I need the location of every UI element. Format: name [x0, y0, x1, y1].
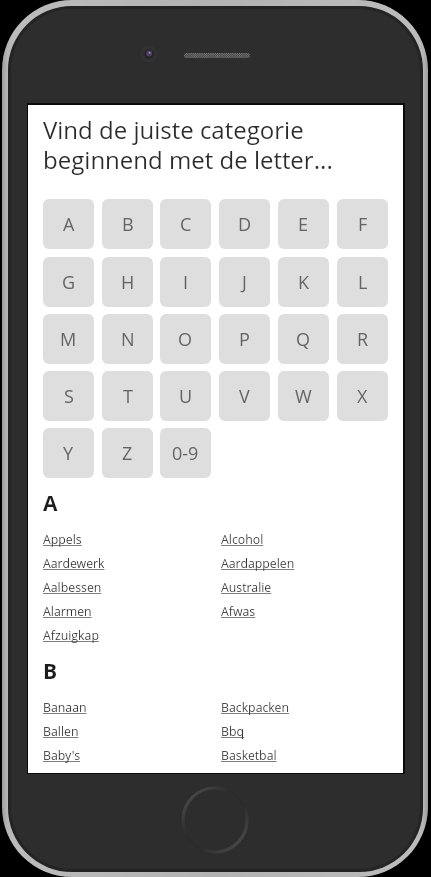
staticText: Afwas — [221, 603, 256, 620]
button[interactable]: P — [219, 314, 270, 364]
staticText: K — [298, 270, 310, 295]
button[interactable]: D — [219, 199, 270, 249]
button[interactable]: 0-9 — [160, 428, 211, 478]
staticText: Bbq — [221, 723, 245, 740]
button[interactable]: L — [337, 257, 388, 307]
button[interactable]: E — [278, 199, 329, 249]
staticText: U — [179, 384, 193, 409]
staticText: Aardewerk — [43, 555, 105, 572]
staticText: R — [357, 327, 369, 352]
staticText: Basketbal — [221, 747, 277, 764]
button[interactable]: Aardewerk — [43, 555, 105, 573]
staticText: Alarmen — [43, 603, 92, 620]
button[interactable]: R — [337, 314, 388, 364]
staticText: V — [239, 384, 250, 409]
staticText: Australie — [221, 579, 272, 596]
staticText: M — [60, 327, 77, 352]
staticText: Afzuigkap — [43, 627, 99, 644]
staticText: B — [122, 212, 134, 237]
staticText: Q — [296, 327, 311, 352]
staticText: G — [62, 270, 76, 295]
staticText: N — [121, 327, 135, 352]
button[interactable]: Aalbessen — [43, 579, 102, 597]
button[interactable]: K — [278, 257, 329, 307]
button[interactable]: U — [160, 371, 211, 421]
other: Front camera — [139, 44, 159, 64]
button[interactable]: B — [102, 199, 153, 249]
button[interactable]: O — [160, 314, 211, 364]
button[interactable]: Alcohol — [221, 531, 264, 549]
staticText: S — [64, 384, 74, 409]
button[interactable]: Z — [102, 428, 153, 478]
button[interactable]: Basketbal — [221, 747, 277, 765]
staticText: T — [123, 384, 133, 409]
staticText: Z — [122, 441, 133, 466]
button[interactable]: V — [219, 371, 270, 421]
button[interactable]: N — [102, 314, 153, 364]
staticText: Banaan — [43, 699, 87, 716]
button[interactable]: Y — [43, 428, 94, 478]
button[interactable]: Aardappelen — [221, 555, 295, 573]
button[interactable]: Banaan — [43, 699, 87, 717]
button[interactable]: H — [102, 257, 153, 307]
staticText: H — [121, 270, 135, 295]
button[interactable]: Australie — [221, 579, 272, 597]
button[interactable]: Afzuigkap — [43, 627, 99, 645]
button[interactable]: F — [337, 199, 388, 249]
button[interactable]: X — [337, 371, 388, 421]
button[interactable]: W — [278, 371, 329, 421]
staticText: Vind de juiste categorie beginnend met d… — [43, 113, 363, 176]
staticText: Appels — [43, 531, 82, 548]
staticText: Aardappelen — [221, 555, 295, 572]
button[interactable]: M — [43, 314, 94, 364]
button[interactable]: S — [43, 371, 94, 421]
staticText: F — [358, 212, 368, 237]
other: Home — [180, 785, 250, 855]
staticText: Baby's — [43, 747, 81, 764]
staticText: L — [358, 270, 368, 295]
staticText: P — [239, 327, 250, 352]
staticText: B — [43, 657, 58, 686]
staticText: D — [238, 212, 252, 237]
staticText: A — [43, 489, 58, 518]
button[interactable]: T — [102, 371, 153, 421]
button[interactable]: J — [219, 257, 270, 307]
button[interactable]: Baby's — [43, 747, 81, 765]
staticText: Backpacken — [221, 699, 289, 716]
button[interactable]: A — [43, 199, 94, 249]
staticText: X — [357, 384, 368, 409]
button[interactable]: C — [160, 199, 211, 249]
staticText: Alcohol — [221, 531, 264, 548]
staticText: J — [242, 270, 247, 295]
button[interactable]: Backpacken — [221, 699, 289, 717]
button[interactable]: Ballen — [43, 723, 79, 741]
button[interactable]: I — [160, 257, 211, 307]
staticText: E — [298, 212, 309, 237]
staticText: Y — [63, 441, 74, 466]
staticText: A — [63, 212, 75, 237]
button[interactable]: Alarmen — [43, 603, 92, 621]
staticText: W — [295, 384, 312, 409]
button[interactable]: Afwas — [221, 603, 256, 621]
button[interactable]: Bbq — [221, 723, 245, 741]
staticText: C — [180, 212, 192, 237]
staticText: O — [178, 327, 193, 352]
button[interactable]: Appels — [43, 531, 82, 549]
button[interactable]: G — [43, 257, 94, 307]
staticText: Ballen — [43, 723, 79, 740]
button[interactable]: Q — [278, 314, 329, 364]
staticText: 0-9 — [172, 441, 199, 466]
staticText: I — [183, 270, 189, 295]
staticText: Aalbessen — [43, 579, 102, 596]
